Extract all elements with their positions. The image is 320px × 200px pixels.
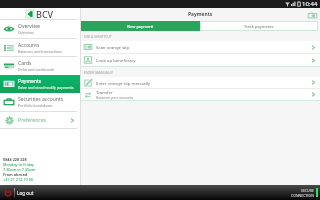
button[interactable]: Track payments (200, 21, 318, 31)
staticText: 10:44 (302, 0, 318, 8)
staticText: 7.30am to 7.30pm (3, 167, 36, 172)
button[interactable]: Transfer (81, 89, 320, 100)
staticText: Monday to Friday (3, 162, 35, 167)
staticText: Payments (18, 78, 42, 85)
staticText: BCV (36, 8, 54, 19)
staticText: Preferences (18, 117, 46, 124)
staticText: New payment (127, 24, 154, 29)
staticText: Transfer (96, 89, 113, 95)
staticText: Balances and transactions (18, 49, 63, 54)
button[interactable]: Payments (0, 75, 80, 93)
staticText: Portfolio breakdown (18, 103, 53, 108)
staticText: USE A SHORTCUT (84, 34, 112, 39)
button[interactable]: Securities accounts (0, 93, 80, 111)
button[interactable]: Accounts (0, 39, 80, 56)
staticText: Enter and view/modify payments (18, 85, 74, 90)
button[interactable]: New payment (81, 21, 200, 31)
button[interactable]: Cards (0, 57, 80, 75)
staticText: Between your accounts (96, 95, 134, 100)
staticText: SECURE (301, 188, 314, 193)
staticText: +41 21 212 10 00 (3, 177, 34, 182)
staticText: Debit and creditcards (18, 67, 55, 72)
staticText: Overview (18, 23, 40, 30)
button[interactable]: Scan orange slip (81, 41, 320, 53)
button[interactable]: Look up beneficiary (81, 54, 320, 66)
button[interactable]: Log out (3, 188, 12, 197)
staticText: From abroad (3, 172, 28, 177)
button[interactable]: Scan document (307, 10, 317, 20)
staticText: 0844 228 228 (3, 157, 27, 162)
staticText: Payments (188, 11, 213, 18)
button[interactable]: Enter orange slip manually (81, 77, 320, 88)
staticText: Enter orange slip manually (96, 80, 151, 86)
staticText: Scan orange slip (96, 44, 130, 50)
button[interactable]: Overview (0, 20, 80, 38)
staticText: Log out (17, 190, 34, 196)
staticText: Accounts (18, 42, 40, 49)
staticText: Securities accounts (18, 96, 64, 103)
staticText: ENTER MANUALLY (84, 70, 114, 75)
staticText: Track payments (244, 24, 274, 29)
button[interactable]: Preferences (0, 112, 80, 128)
staticText: Overview (18, 30, 34, 35)
staticText: Cards (18, 60, 32, 67)
staticText: Look up beneficiary (96, 57, 136, 63)
staticText: CONNECTION (291, 193, 314, 198)
